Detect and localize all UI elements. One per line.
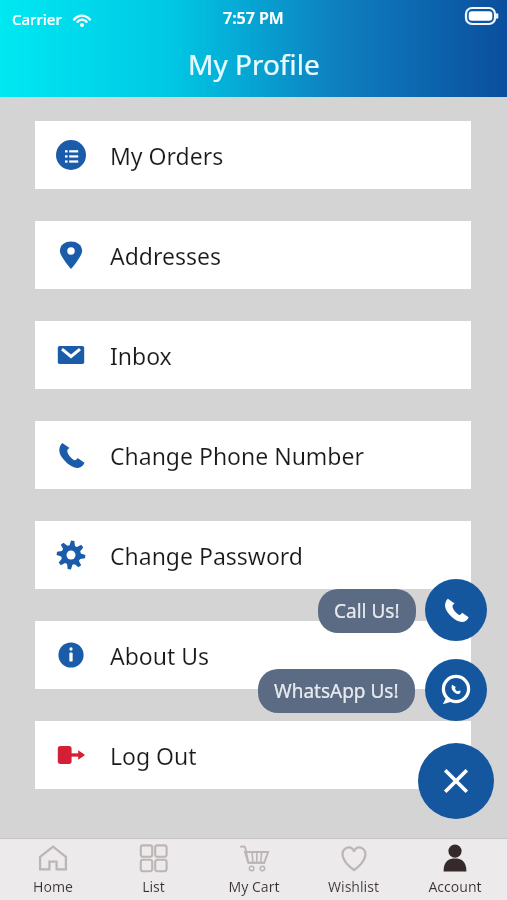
button[interactable]: Home: [5, 839, 100, 900]
button[interactable]: Addresses: [35, 221, 471, 289]
button[interactable]: Close menu: [418, 743, 494, 819]
button[interactable]: My Orders: [35, 121, 471, 189]
staticText: About Us: [110, 640, 210, 671]
button[interactable]: My Cart: [206, 839, 301, 900]
staticText: WhatsApp Us!: [274, 678, 399, 704]
staticText: Home: [33, 877, 73, 896]
button[interactable]: List: [106, 839, 201, 900]
button[interactable]: Log Out: [35, 721, 471, 789]
staticText: Addresses: [110, 240, 222, 271]
staticText: Change Password: [110, 540, 303, 571]
button[interactable]: Wishlist: [306, 839, 401, 900]
staticText: 7:57 PM: [223, 7, 284, 29]
button[interactable]: About Us: [35, 621, 471, 689]
staticText: Account: [428, 877, 482, 896]
button[interactable]: Inbox: [35, 321, 471, 389]
staticText: My Cart: [228, 877, 280, 896]
button[interactable]: WhatsApp Us!: [258, 669, 415, 713]
button[interactable]: Change Phone Number: [35, 421, 471, 489]
staticText: Inbox: [110, 340, 172, 371]
button[interactable]: Change Password: [35, 521, 471, 589]
button[interactable]: Call Us: [425, 579, 487, 641]
staticText: Change Phone Number: [110, 440, 364, 471]
staticText: My Orders: [110, 140, 224, 171]
staticText: Call Us!: [334, 598, 400, 624]
staticText: Wishlist: [328, 877, 379, 896]
staticText: Carrier: [12, 9, 62, 29]
button[interactable]: WhatsApp Us: [425, 659, 487, 721]
staticText: My Profile: [188, 45, 320, 83]
staticText: Log Out: [110, 740, 197, 771]
button[interactable]: Call Us!: [318, 589, 416, 633]
button[interactable]: Account: [407, 839, 502, 900]
staticText: List: [142, 877, 165, 896]
